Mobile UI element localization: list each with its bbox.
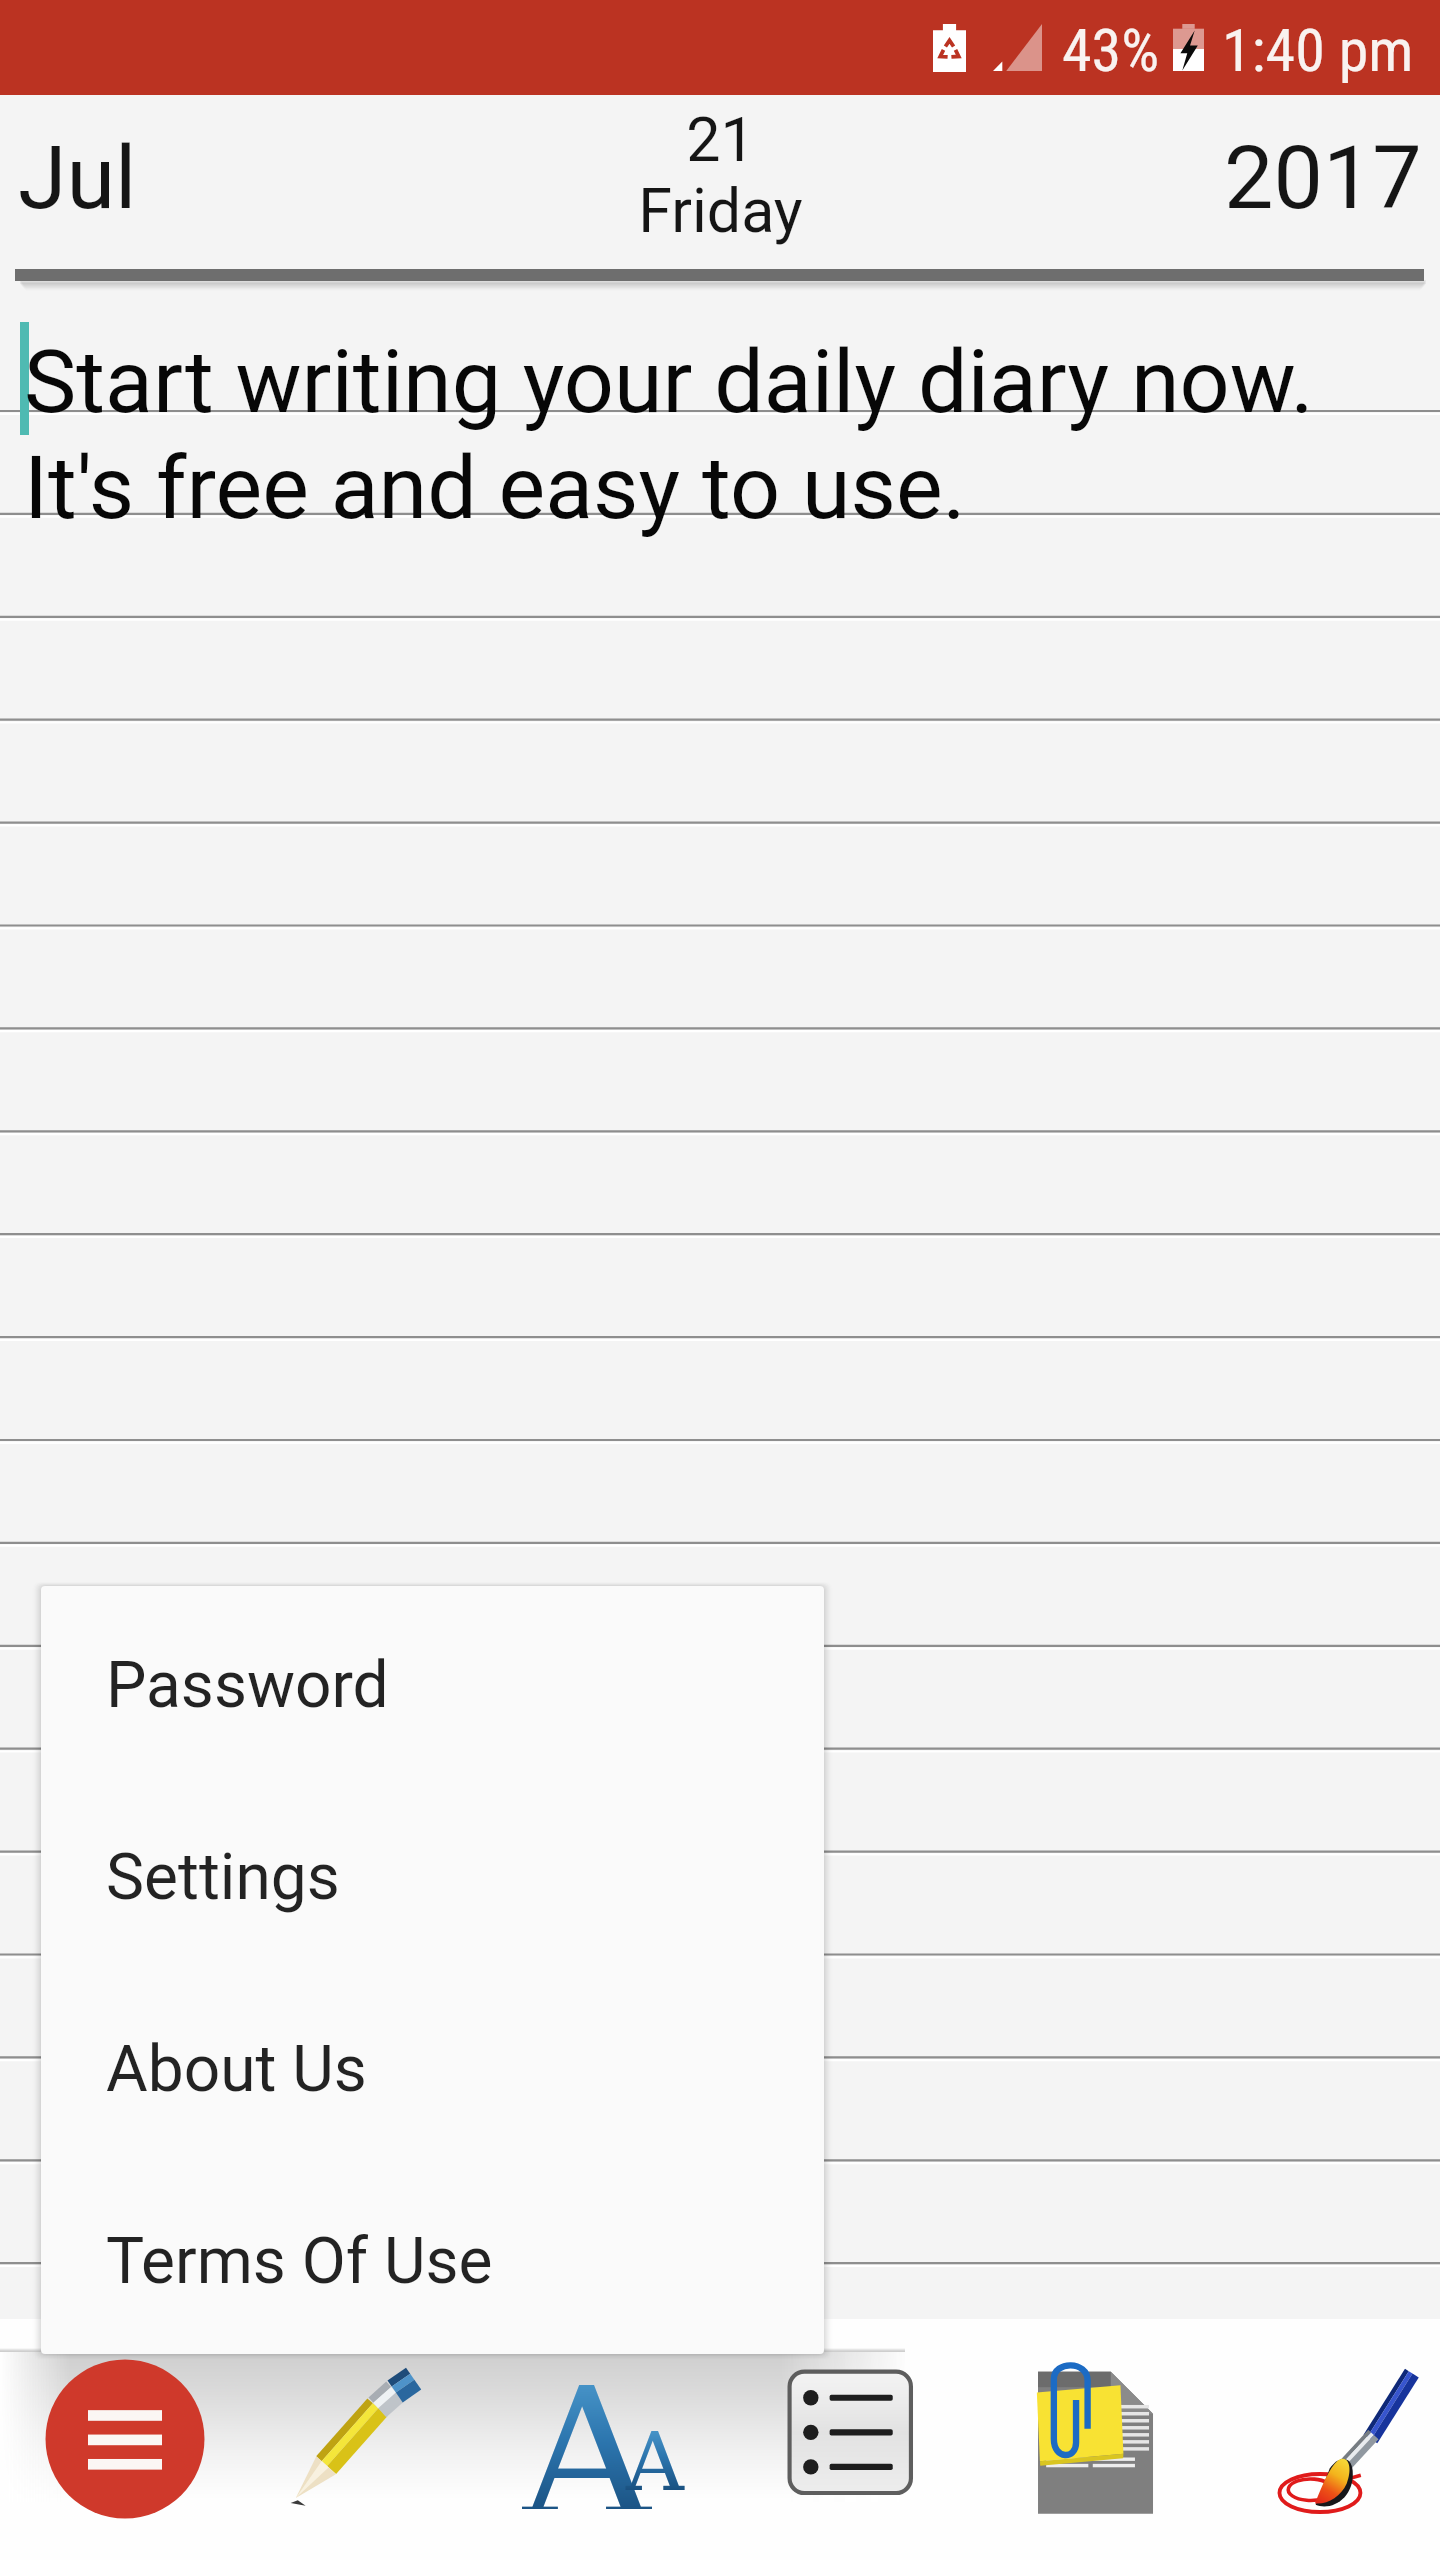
staticText: A: [522, 2349, 652, 2509]
staticText: Start writing your daily diary now. It's…: [24, 330, 1314, 539]
staticText: 2017: [1224, 126, 1422, 229]
button[interactable]: Settings: [41, 1778, 824, 1970]
staticText: Jul: [18, 126, 137, 229]
button[interactable]: Password: [41, 1586, 824, 1778]
staticText: 1:40 pm: [1222, 15, 1414, 85]
button[interactable]: Attach: [1015, 2359, 1175, 2519]
staticText: Password: [106, 1648, 389, 1723]
staticText: 43%: [1062, 15, 1160, 85]
staticText: A: [626, 2416, 656, 2509]
button[interactable]: Write: [275, 2359, 435, 2519]
button[interactable]: List: [771, 2359, 931, 2519]
button[interactable]: Terms Of Use: [41, 2162, 824, 2354]
staticText: Terms Of Use: [106, 2224, 493, 2299]
staticText: Friday: [638, 175, 803, 246]
button[interactable]: About Us: [41, 1970, 824, 2162]
button[interactable]: Menu: [45, 2359, 205, 2519]
staticText: 21: [686, 104, 755, 175]
button[interactable]: Font: [528, 2359, 688, 2519]
staticText: Settings: [106, 1840, 340, 1915]
button[interactable]: Draw: [1266, 2359, 1426, 2519]
staticText: About Us: [106, 2032, 367, 2107]
